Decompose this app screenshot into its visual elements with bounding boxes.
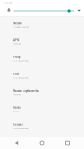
staticText: Hasło: [13, 106, 21, 110]
staticText: APN: [13, 38, 19, 42]
button[interactable]: Hasło: [0, 101, 84, 118]
staticText: Nie ustawiono: [13, 126, 28, 130]
button[interactable]: Recent apps: [58, 137, 76, 149]
button[interactable]: Back: [7, 137, 25, 149]
staticText: Nazwa użytkownika: [13, 89, 39, 93]
staticText: Nazwa: [13, 21, 22, 25]
staticText: Nie ustawiono: [13, 76, 28, 79]
staticText: internet: [13, 93, 21, 96]
button[interactable]: Serwer: [0, 118, 84, 135]
button[interactable]: Nazwa użytkownika: [0, 84, 84, 101]
staticText: Nie ustawiono: [13, 59, 28, 62]
staticText: Dzwonek: [3, 1, 12, 4]
staticText: Port: [13, 72, 19, 76]
staticText: internet: [13, 42, 21, 45]
button[interactable]: Port: [0, 67, 84, 84]
staticText: Proxy: [13, 55, 20, 59]
button[interactable]: Home: [33, 137, 51, 149]
button[interactable]: Nazwa: [0, 16, 84, 33]
button[interactable]: Proxy: [0, 50, 84, 67]
staticText: Orange Internet: [13, 25, 29, 28]
button[interactable]: APN: [0, 33, 84, 50]
staticText: Serwer: [13, 123, 23, 126]
staticText: ••••••: [13, 110, 19, 113]
button[interactable]: Expand volume controls: [0, 0, 84, 12]
